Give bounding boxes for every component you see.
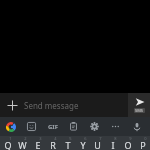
- button[interactable]: 8: [105, 136, 120, 150]
- staticText: 6: [84, 136, 87, 141]
- staticText: I: [111, 139, 115, 150]
- button[interactable]: More options: [105, 117, 126, 136]
- button[interactable]: Send message: [24, 93, 128, 117]
- button[interactable]: Send SMS: [128, 93, 150, 117]
- staticText: SMS: [135, 108, 144, 113]
- button[interactable]: 1: [0, 136, 15, 150]
- button[interactable]: 4: [45, 136, 60, 150]
- button[interactable]: Add attachment: [0, 93, 24, 117]
- button[interactable]: GIF: [42, 117, 63, 136]
- button[interactable]: 9: [120, 136, 135, 150]
- staticText: U: [94, 139, 101, 150]
- button[interactable]: 6: [75, 136, 90, 150]
- staticText: T: [65, 139, 71, 150]
- staticText: 2: [24, 136, 27, 141]
- button[interactable]: 5: [60, 136, 75, 150]
- staticText: W: [18, 139, 27, 150]
- staticText: 5: [69, 136, 72, 141]
- staticText: 1: [9, 136, 12, 141]
- staticText: Y: [80, 139, 86, 150]
- button[interactable]: Google Assistant: [0, 117, 21, 136]
- staticText: O: [124, 139, 132, 150]
- staticText: R: [50, 139, 56, 150]
- button[interactable]: Clipboard: [63, 117, 84, 136]
- staticText: 8: [114, 136, 117, 141]
- button[interactable]: 2: [15, 136, 30, 150]
- staticText: P: [140, 139, 146, 150]
- staticText: 4: [54, 136, 57, 141]
- staticText: Send message: [24, 100, 79, 111]
- button[interactable]: Settings: [84, 117, 105, 136]
- button[interactable]: 3: [30, 136, 45, 150]
- staticText: E: [35, 139, 41, 150]
- staticText: 0: [144, 136, 147, 141]
- staticText: Q: [4, 139, 12, 150]
- button[interactable]: Voice input: [126, 117, 147, 136]
- staticText: 3: [39, 136, 42, 141]
- staticText: 9: [129, 136, 132, 141]
- staticText: GIF: [48, 123, 58, 131]
- button[interactable]: 7: [90, 136, 105, 150]
- button[interactable]: Stickers: [21, 117, 42, 136]
- staticText: 7: [99, 136, 102, 141]
- button[interactable]: 0: [135, 136, 150, 150]
